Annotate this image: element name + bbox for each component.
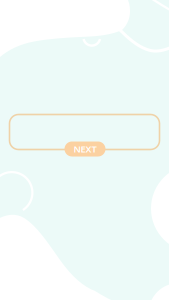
button[interactable]: NEXT <box>64 141 105 156</box>
staticText: NEXT <box>73 143 96 155</box>
